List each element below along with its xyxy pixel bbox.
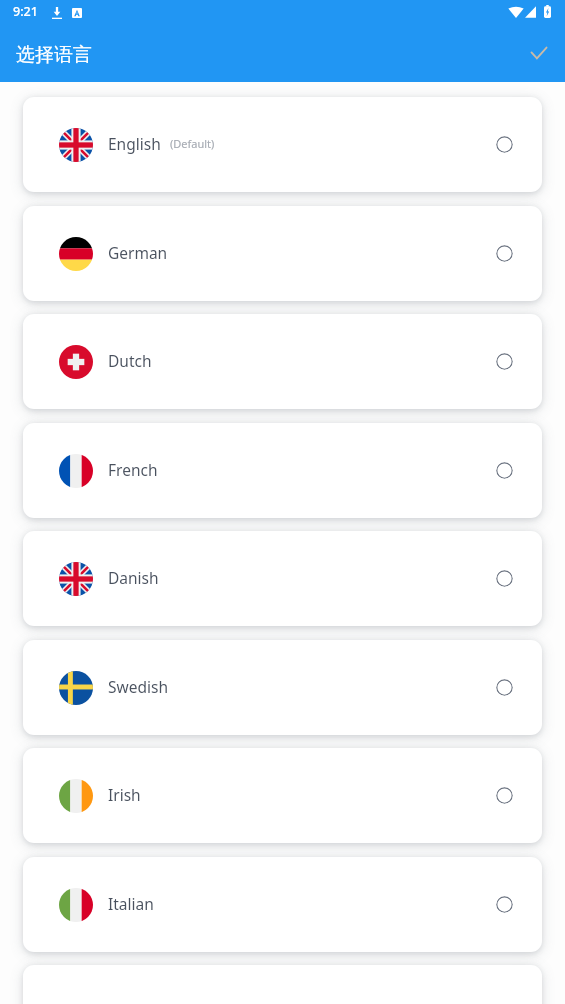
- button[interactable]: Confirm: [517, 31, 561, 75]
- button[interactable]: Danish: [23, 531, 542, 626]
- button[interactable]: Select Swedish: [496, 679, 513, 696]
- button[interactable]: Select Irish: [496, 787, 513, 804]
- staticText: Danish: [108, 567, 159, 588]
- button[interactable]: Italian: [23, 857, 542, 952]
- button[interactable]: French: [23, 423, 542, 518]
- button[interactable]: Select Dutch: [496, 353, 513, 370]
- staticText: French: [108, 459, 158, 480]
- button[interactable]: Select Italian: [496, 896, 513, 913]
- button[interactable]: Irish: [23, 748, 542, 843]
- button[interactable]: Select English: [496, 136, 513, 153]
- staticText: Swedish: [108, 676, 168, 697]
- staticText: 9:21: [13, 3, 38, 20]
- button[interactable]: English: [23, 97, 542, 192]
- staticText: Italian: [108, 893, 154, 914]
- staticText: Irish: [108, 784, 141, 805]
- button[interactable]: Select German: [496, 245, 513, 262]
- staticText: (Default): [170, 136, 215, 151]
- staticText: Dutch: [108, 350, 152, 371]
- staticText: English: [108, 133, 161, 154]
- button[interactable]: Dutch: [23, 314, 542, 409]
- button[interactable]: Swedish: [23, 640, 542, 735]
- button[interactable]: German: [23, 206, 542, 301]
- staticText: 选择语言: [16, 43, 92, 67]
- button[interactable]: Select French: [496, 462, 513, 479]
- staticText: German: [108, 242, 168, 263]
- button[interactable]: Select Danish: [496, 570, 513, 587]
